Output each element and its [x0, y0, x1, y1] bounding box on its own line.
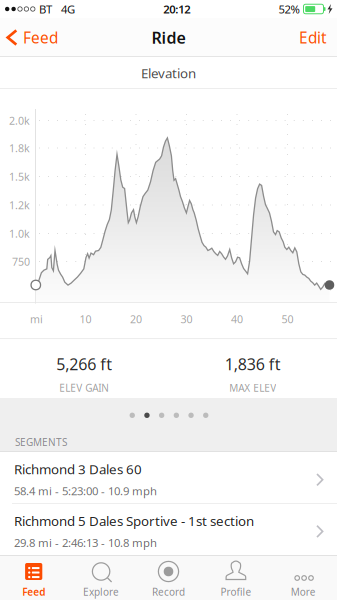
staticText: 20 [130, 312, 142, 326]
staticText: 5,266 ft [56, 353, 112, 375]
staticText: 40 [231, 312, 243, 326]
staticText: Feed [22, 585, 45, 599]
button[interactable]: Feed [0, 555, 67, 600]
staticText: MAX ELEV [229, 381, 276, 395]
staticText: 2.0k [9, 113, 30, 128]
staticText: BT [39, 1, 52, 17]
staticText: Profile [220, 585, 251, 599]
staticText: 1.8k [9, 141, 30, 155]
staticText: Record [152, 585, 185, 599]
button[interactable]: Richmond 3 Dales 60 [0, 452, 337, 503]
staticText: mi [30, 312, 43, 326]
button[interactable]: Record [135, 555, 202, 600]
button[interactable]: Edit [287, 18, 337, 57]
staticText: Richmond 5 Dales Sportive - 1st section [14, 512, 254, 530]
staticText: 4G [52, 1, 75, 17]
button[interactable]: More [270, 555, 337, 600]
button[interactable]: Explore [67, 555, 135, 600]
staticText: Richmond 3 Dales 60 [14, 460, 142, 478]
staticText: 1.5k [9, 169, 30, 184]
staticText: 750 [12, 254, 30, 269]
staticText: 1.2k [9, 198, 30, 212]
staticText: ELEV GAIN [59, 381, 109, 395]
staticText: More [291, 585, 316, 599]
staticText: Ride [151, 27, 185, 48]
staticText: Elevation [141, 64, 196, 82]
staticText: 30 [180, 312, 192, 326]
staticText: 52% [278, 1, 299, 17]
staticText: Edit [299, 27, 327, 48]
staticText: 1.0k [9, 226, 30, 241]
staticText: 10 [79, 312, 91, 326]
staticText: Explore [83, 585, 119, 599]
button[interactable]: Profile [202, 555, 270, 600]
staticText: 29.8 mi - 2:46:13 - 10.8 mph [14, 535, 157, 550]
button[interactable]: Richmond 5 Dales Sportive - 1st section [0, 504, 337, 555]
staticText: 50 [281, 312, 293, 326]
staticText: 20:12 [163, 1, 190, 17]
button[interactable]: Feed [0, 18, 66, 57]
staticText: 58.4 mi - 5:23:00 - 10.9 mph [14, 483, 157, 499]
staticText: SEGMENTS [15, 435, 67, 449]
staticText: Feed [23, 27, 58, 48]
staticText: 1,836 ft [225, 353, 281, 375]
